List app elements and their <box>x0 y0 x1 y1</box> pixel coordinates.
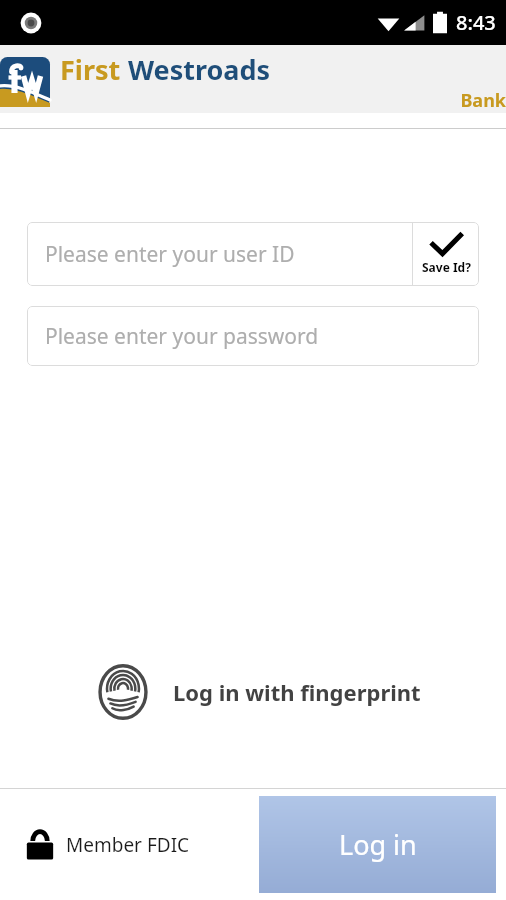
button[interactable]: Save Id <box>413 222 479 286</box>
staticText: Log in with fingerprint <box>173 677 421 707</box>
staticText: Save Id? <box>422 259 471 275</box>
button[interactable]: Log in with fingerprint <box>0 658 506 726</box>
button[interactable]: Log in <box>259 796 496 893</box>
button[interactable]: Please enter your user ID <box>27 222 412 286</box>
button[interactable]: Please enter your password <box>27 306 479 366</box>
button[interactable]: Member FDIC <box>26 828 190 862</box>
staticText: Bank <box>60 88 506 113</box>
staticText: Please enter your password <box>45 322 319 351</box>
staticText: Member FDIC <box>66 832 190 858</box>
staticText: Log in <box>339 826 417 863</box>
staticText: First <box>60 51 128 88</box>
staticText: Please enter your user ID <box>45 240 295 269</box>
staticText: Westroads <box>128 51 271 88</box>
staticText: 8:43 <box>456 9 496 36</box>
